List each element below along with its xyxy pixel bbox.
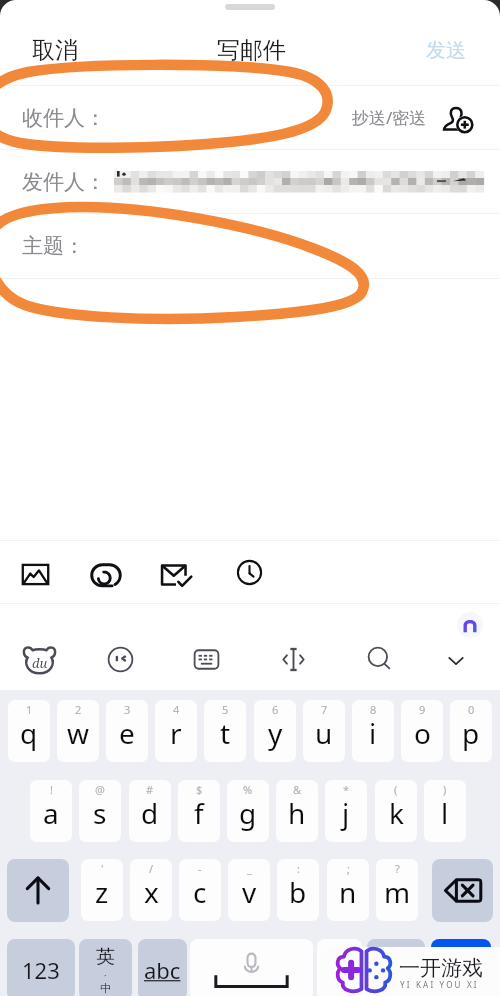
staticText: / [149, 861, 154, 876]
staticText: s [93, 794, 107, 832]
button[interactable]: Schedule send [235, 558, 264, 587]
button[interactable]: Shift [7, 859, 69, 922]
button[interactable]: # [129, 780, 171, 842]
button[interactable]: 1 [8, 700, 50, 762]
staticText: · [104, 969, 107, 981]
staticText: % [243, 782, 253, 797]
staticText: v [242, 873, 257, 911]
button[interactable]: @ [79, 780, 121, 842]
staticText: ; [347, 861, 350, 876]
button[interactable]: 发送 [414, 30, 478, 71]
button[interactable]: - [179, 859, 221, 921]
staticText: r [170, 714, 182, 752]
button[interactable]: Enter [431, 939, 491, 996]
button[interactable]: Add contact [441, 104, 475, 134]
button[interactable]: ， [317, 939, 362, 996]
staticText: m [384, 873, 411, 911]
button[interactable]: Baidu input [21, 643, 58, 676]
staticText: w [67, 714, 90, 752]
staticText: y [268, 714, 283, 752]
staticText: ， [331, 958, 349, 981]
staticText: q [20, 714, 38, 752]
button[interactable]: Insert image [20, 559, 51, 590]
button[interactable]: 3 [106, 700, 148, 762]
button[interactable]: $ [178, 780, 220, 842]
staticText: 发送 [426, 38, 466, 63]
button[interactable]: 7 [303, 700, 345, 762]
button[interactable]: Mail templates [159, 558, 193, 592]
button[interactable]: * [325, 780, 367, 842]
button[interactable]: Search [363, 643, 400, 676]
button[interactable]: ; [327, 859, 369, 921]
staticText: 取消 [32, 36, 78, 65]
button[interactable]: AI assistant [457, 612, 483, 638]
staticText: ? [395, 861, 400, 876]
button[interactable]: 2 [57, 700, 99, 762]
button[interactable]: 123 [7, 939, 75, 996]
staticText: 主题： [22, 233, 85, 259]
button[interactable]: Move cursor [276, 642, 312, 677]
button[interactable]: 9 [401, 700, 443, 762]
button[interactable]: ) [424, 780, 466, 842]
button[interactable]: Attachment [89, 558, 123, 592]
staticText: 2 [75, 702, 82, 717]
staticText: 9 [419, 702, 426, 717]
staticText: g [239, 794, 257, 832]
staticText: b [289, 873, 307, 911]
button[interactable]: Emoji [104, 643, 138, 676]
button[interactable]: Hide keyboard [443, 648, 473, 674]
staticText: x [144, 873, 159, 911]
button[interactable]: Space [190, 939, 313, 996]
button[interactable]: _ [228, 859, 270, 921]
staticText: abc [144, 955, 181, 985]
button[interactable]: ( [375, 780, 417, 842]
staticText: @ [95, 782, 105, 797]
button[interactable]: 4 [155, 700, 197, 762]
button[interactable]: abc [138, 939, 187, 996]
staticText: & [293, 782, 302, 797]
button[interactable]: : [277, 859, 319, 921]
button[interactable]: & [276, 780, 318, 842]
button[interactable]: 取消 [20, 28, 90, 73]
button[interactable]: ! [30, 780, 72, 842]
button[interactable]: / [130, 859, 172, 921]
button[interactable]: ? [376, 859, 418, 921]
button[interactable]: % [227, 780, 269, 842]
staticText: o [414, 714, 431, 752]
staticText: _ [247, 861, 252, 876]
button[interactable]: 抄送/密送 [352, 106, 427, 129]
staticText: 1 [26, 702, 33, 717]
staticText: e [119, 714, 135, 752]
staticText: 0 [468, 702, 475, 717]
button[interactable]: 5 [204, 700, 246, 762]
staticText: 3 [124, 702, 131, 717]
button[interactable]: 8 [352, 700, 394, 762]
staticText: 7 [321, 702, 328, 717]
staticText: 一开游戏 [399, 955, 483, 981]
button[interactable]: 主题： [0, 214, 500, 278]
button[interactable]: Backspace [432, 859, 493, 922]
button[interactable]: 收件人： [0, 86, 500, 149]
button[interactable]: 符 [367, 939, 425, 996]
staticText: d [141, 794, 159, 832]
staticText: 123 [22, 955, 60, 985]
button[interactable] [0, 279, 500, 540]
staticText: t [220, 714, 231, 752]
staticText: 8 [370, 702, 377, 717]
staticText: k [389, 794, 404, 832]
staticText: 中 [100, 981, 111, 995]
staticText: $ [196, 782, 203, 797]
button[interactable]: ' [81, 859, 123, 921]
button[interactable]: 英 [79, 939, 132, 996]
staticText: n [339, 873, 357, 911]
button[interactable]: 发件人： [0, 150, 500, 213]
staticText: 收件人： [22, 105, 106, 131]
button[interactable]: Keyboard layout [190, 643, 226, 676]
staticText: ( [394, 782, 398, 797]
staticText: c [193, 873, 207, 911]
staticText: 写邮件 [217, 36, 286, 65]
staticText: j [342, 794, 350, 832]
button[interactable]: 6 [254, 700, 296, 762]
button[interactable]: 0 [450, 700, 492, 762]
staticText: p [462, 714, 480, 752]
